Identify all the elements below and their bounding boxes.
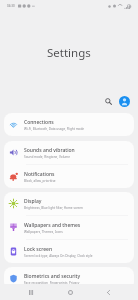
- staticText: 04:30: [7, 4, 15, 8]
- button[interactable]: Notifications: [4, 165, 134, 188]
- staticText: Wallpapers, Themes, Icons: [24, 230, 63, 234]
- button[interactable]: Biometrics and security: [4, 267, 134, 290]
- button[interactable]: Recents: [25, 284, 37, 300]
- button[interactable]: Account: [116, 93, 132, 109]
- staticText: Screen lock type, Always On Display, Clo…: [24, 254, 93, 258]
- button[interactable]: Back: [102, 284, 114, 300]
- staticText: Display: [24, 198, 42, 205]
- button[interactable]: Home: [64, 284, 76, 300]
- staticText: Wallpapers and themes: [24, 222, 81, 229]
- button[interactable]: Display: [4, 192, 134, 215]
- button[interactable]: Connections: [4, 113, 134, 136]
- staticText: Lock screen: [24, 246, 53, 253]
- staticText: Sound mode, Ringtone, Volume: [24, 155, 70, 159]
- staticText: Wi-Fi, Bluetooth, Data usage, Flight mod…: [24, 127, 85, 131]
- staticText: Connections: [24, 119, 54, 126]
- button[interactable]: Search: [100, 93, 116, 109]
- staticText: Notifications: [24, 171, 55, 178]
- button[interactable]: Wallpapers and themes: [4, 216, 134, 239]
- staticText: Brightness, Blue light filter, Home scre…: [24, 206, 84, 210]
- staticText: Settings: [47, 45, 91, 61]
- button[interactable]: Lock screen: [4, 240, 134, 263]
- staticText: Sounds and vibration: [24, 147, 75, 154]
- staticText: Block, allow, prioritise: [24, 179, 56, 183]
- button[interactable]: Sounds and vibration: [4, 141, 134, 164]
- staticText: Biometrics and security: [24, 273, 81, 280]
- staticText: Face recognition, Fingerprints, Privacy: [24, 281, 80, 285]
